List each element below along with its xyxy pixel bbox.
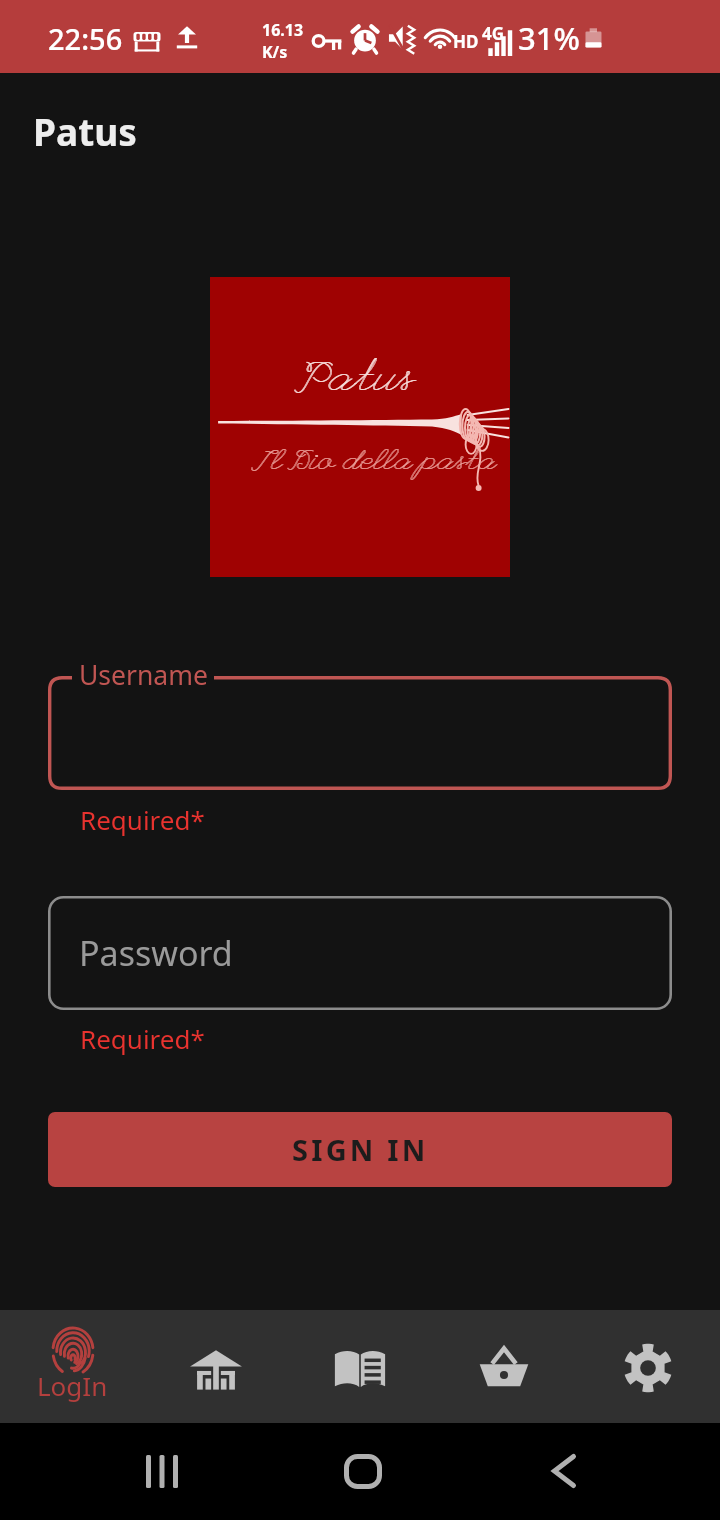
button[interactable]: Menu xyxy=(288,1310,432,1423)
button[interactable]: Recents xyxy=(120,1431,204,1511)
button[interactable]: Home xyxy=(321,1431,405,1511)
staticText: Username xyxy=(79,657,208,693)
button[interactable]: Password xyxy=(48,896,672,1010)
button[interactable]: LogIn xyxy=(0,1310,144,1423)
staticText: Required* xyxy=(80,1021,205,1056)
staticText: K/s xyxy=(262,41,288,63)
staticText: 31% xyxy=(518,17,580,59)
staticText: Password xyxy=(79,930,233,976)
button[interactable]: Settings xyxy=(576,1310,720,1423)
staticText: 22:56 xyxy=(48,19,123,58)
staticText: SIGN IN xyxy=(292,1130,429,1169)
staticText: HD xyxy=(453,30,479,53)
staticText: Patus xyxy=(296,358,416,407)
button[interactable]: Restaurants xyxy=(144,1310,288,1423)
button[interactable]: Back xyxy=(522,1431,606,1511)
button[interactable]: SIGN IN xyxy=(48,1112,672,1187)
staticText: Required* xyxy=(80,802,205,837)
button[interactable] xyxy=(48,676,672,790)
staticText: Il Dio della pasta xyxy=(253,448,498,481)
staticText: LogIn xyxy=(37,1368,108,1403)
staticText: 4G xyxy=(482,22,505,45)
staticText: Patus xyxy=(33,106,137,156)
staticText: 16.13 xyxy=(262,19,304,41)
staticText: Il Dio della pasta xyxy=(252,448,497,481)
staticText: Patus xyxy=(295,358,415,407)
button[interactable]: Cart xyxy=(432,1310,576,1423)
